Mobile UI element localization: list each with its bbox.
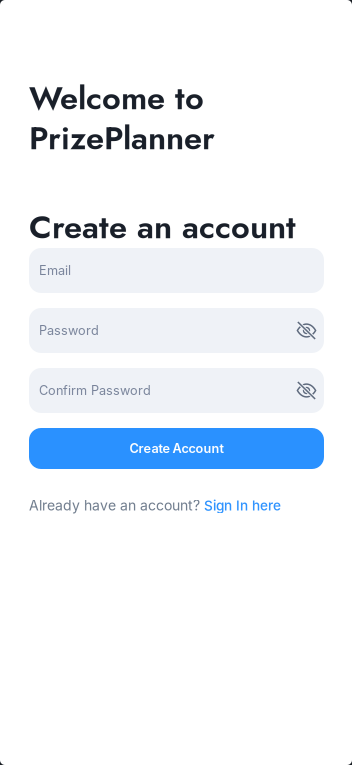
button[interactable]: Sign In here [204, 497, 281, 514]
button[interactable]: Show password [297, 382, 316, 399]
staticText: Already have an account? [29, 497, 204, 514]
staticText: Password [39, 323, 99, 338]
button[interactable]: Show password [297, 322, 316, 339]
staticText: Email [39, 263, 71, 278]
staticText: Welcome to [29, 74, 204, 121]
staticText: Create Account [129, 441, 223, 456]
staticText: Sign In here [204, 497, 281, 514]
staticText: Confirm Password [39, 383, 151, 398]
staticText: Create an account [29, 203, 296, 250]
staticText: PrizePlanner [29, 114, 215, 161]
button[interactable]: Create Account [29, 428, 324, 469]
